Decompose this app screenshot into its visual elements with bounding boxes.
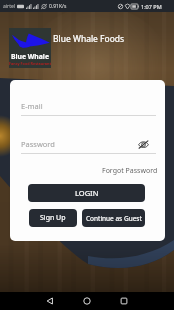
button[interactable]: Forgot Password [88,163,158,178]
staticText: E-mail [21,101,43,111]
staticText: 1:07 PM [141,3,162,10]
staticText: Password [21,139,55,149]
staticText: Blue Whale [11,52,49,61]
staticText: Continue as Guest [86,214,142,223]
button[interactable]: Home [75,292,99,310]
staticText: Fancy Food Restaurant [9,61,51,66]
button[interactable]: LOGIN [28,184,145,202]
staticText: Blue Whale Foods [53,33,125,45]
button[interactable]: Recent apps [112,292,136,310]
button[interactable]: Back [38,292,62,310]
button[interactable]: Show password [136,137,150,151]
staticText: 0.91K/s [49,3,67,10]
button[interactable]: Sign Up [29,209,77,227]
staticText: airtel [3,3,16,10]
staticText: Sign Up [40,213,66,223]
staticText: LOGIN [75,188,99,198]
staticText: Forgot Password [102,166,158,176]
button[interactable]: Continue as Guest [82,209,145,227]
